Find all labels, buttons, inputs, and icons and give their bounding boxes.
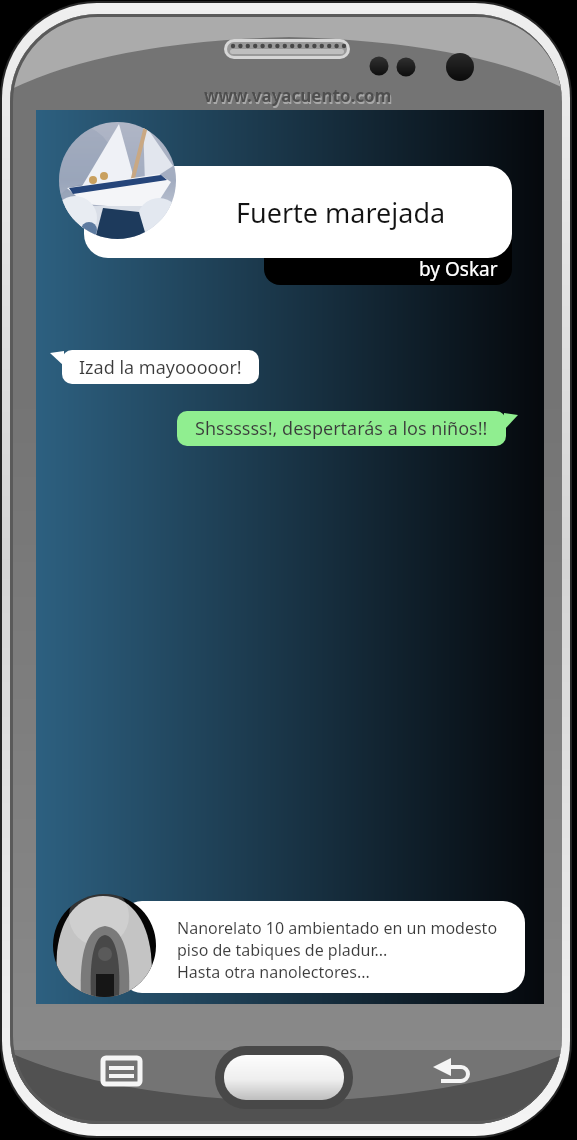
button[interactable]	[427, 1054, 477, 1090]
staticText: piso de tabiques de pladur...	[177, 939, 388, 961]
staticText: Fuerte marejada	[236, 194, 446, 231]
button[interactable]: Fuerte marejada	[84, 166, 512, 258]
button[interactable]	[59, 122, 176, 239]
button[interactable]: Nanorelato 10 ambientado en un modesto	[120, 901, 525, 993]
button[interactable]	[215, 1046, 353, 1109]
staticText: Izad la mayooooor!	[79, 355, 242, 380]
button[interactable]	[53, 894, 156, 997]
staticText: Shssssss!, despertarás a los niños!!	[195, 416, 488, 441]
button[interactable]: Shssssss!, despertarás a los niños!!	[177, 411, 506, 446]
button[interactable]: by Oskar	[264, 238, 512, 285]
staticText: Hasta otra nanolectores...	[177, 961, 370, 983]
button[interactable]	[97, 1054, 145, 1090]
staticText: www.vayacuento.com	[205, 86, 393, 109]
button[interactable]: Izad la mayooooor!	[62, 350, 259, 384]
staticText: Nanorelato 10 ambientado en un modesto	[177, 917, 498, 939]
staticText: by Oskar	[419, 256, 498, 282]
staticText: www.vayacuento.com	[204, 84, 392, 107]
